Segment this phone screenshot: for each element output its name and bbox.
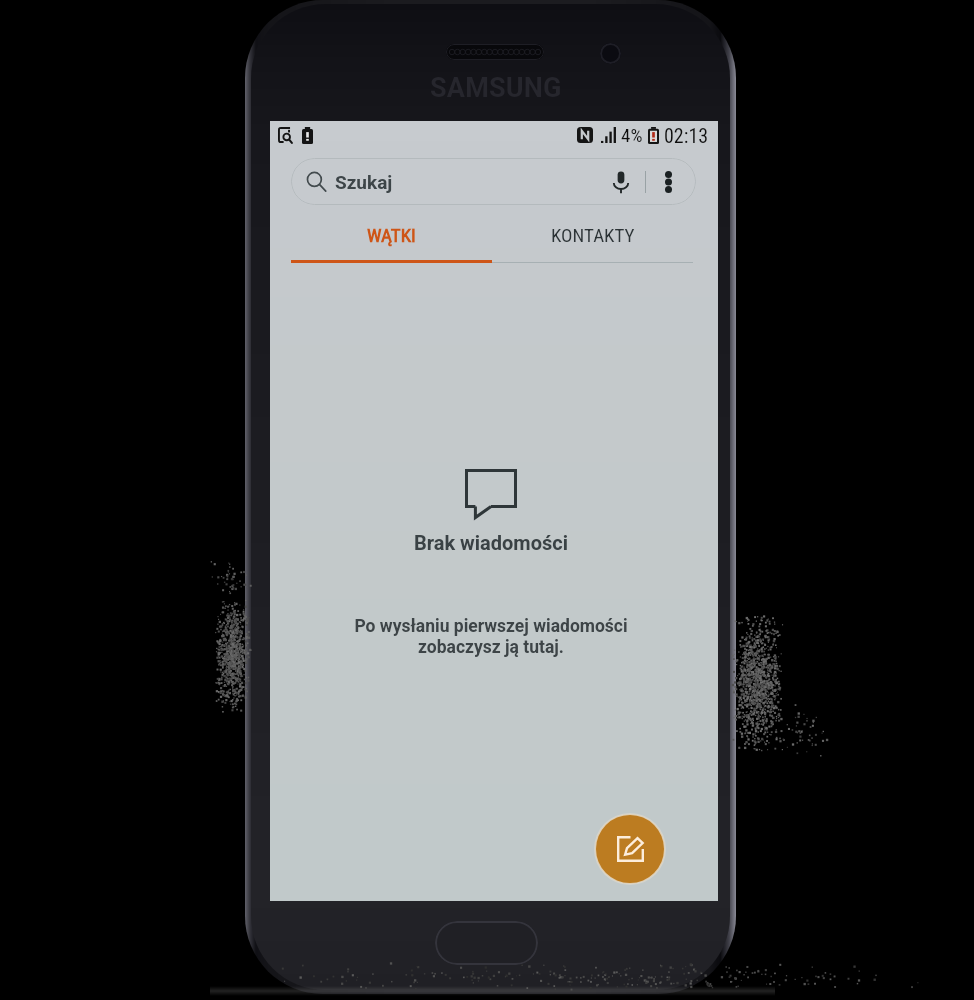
button[interactable]: WĄTKI xyxy=(291,206,492,259)
staticText: SAMSUNG xyxy=(430,72,562,104)
button[interactable]: Szukaj xyxy=(291,158,696,205)
staticText: KONTAKTY xyxy=(551,224,635,246)
staticText: Po wysłaniu pierwszej wiadomości zobaczy… xyxy=(354,616,628,658)
staticText: WĄTKI xyxy=(367,224,416,246)
button[interactable]: Voice search xyxy=(606,167,636,197)
staticText: 4% xyxy=(621,124,643,146)
button[interactable]: KONTAKTY xyxy=(492,206,694,259)
staticText: Szukaj xyxy=(335,171,393,193)
staticText: 02:13 xyxy=(664,124,709,147)
button[interactable]: More options xyxy=(653,167,683,197)
button[interactable]: Compose new message xyxy=(596,815,664,883)
staticText: Brak wiadomości xyxy=(414,531,568,554)
